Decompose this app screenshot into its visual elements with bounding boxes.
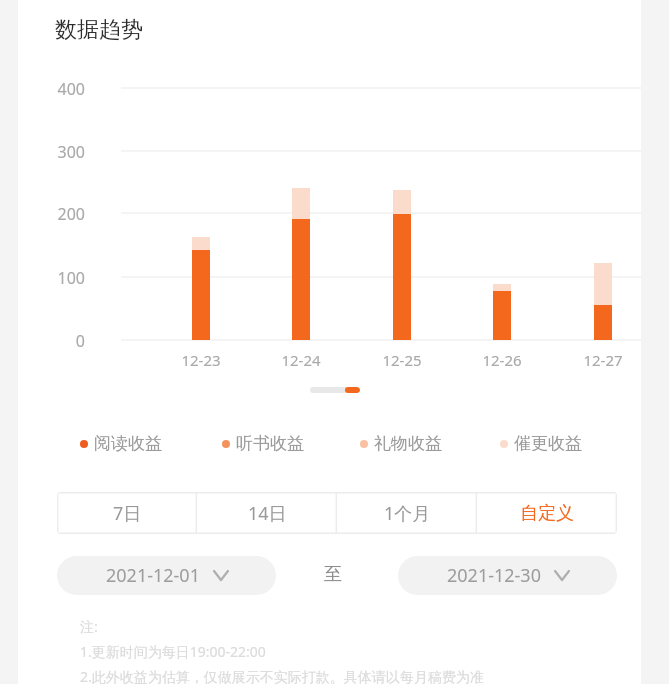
staticText: 12-24 (261, 350, 341, 370)
button[interactable]: 1个月 (337, 492, 477, 534)
staticText: 12-23 (161, 350, 241, 370)
button[interactable]: 自定义 (477, 492, 617, 534)
staticText: 催更收益 (514, 433, 582, 454)
staticText: 300 (38, 141, 85, 163)
button[interactable]: 催更收益 (500, 433, 582, 454)
staticText: 数据趋势 (55, 16, 143, 44)
staticText: 12-27 (563, 350, 643, 370)
button[interactable]: 14日 (197, 492, 337, 534)
button[interactable]: 听书收益 (222, 433, 304, 454)
staticText: 0 (38, 330, 85, 352)
staticText: 听书收益 (236, 433, 304, 454)
staticText: 2021-12-30 (447, 563, 541, 588)
button[interactable]: 7日 (57, 492, 197, 534)
staticText: 7日 (113, 501, 142, 526)
button[interactable]: 2021-12-01 (57, 556, 276, 595)
staticText: 阅读收益 (94, 433, 162, 454)
staticText: 1个月 (384, 501, 431, 526)
staticText: 1.更新时间为每日19:00-22:00 (80, 642, 266, 661)
staticText: 14日 (248, 501, 287, 526)
button[interactable]: 礼物收益 (360, 433, 442, 454)
staticText: 注: (80, 617, 98, 636)
staticText: 自定义 (520, 502, 574, 525)
staticText: 12-25 (362, 350, 442, 370)
button[interactable]: 2021-12-30 (398, 556, 617, 595)
staticText: 100 (38, 267, 85, 289)
staticText: 2.此外收益为估算，仅做展示不实际打款。具体请以每月稿费为准 (80, 667, 484, 684)
staticText: 礼物收益 (374, 433, 442, 454)
staticText: 2021-12-01 (106, 563, 200, 588)
staticText: 12-26 (462, 350, 542, 370)
staticText: 至 (324, 563, 342, 586)
staticText: 400 (38, 78, 85, 100)
button[interactable]: 阅读收益 (80, 433, 162, 454)
staticText: 200 (38, 203, 85, 225)
